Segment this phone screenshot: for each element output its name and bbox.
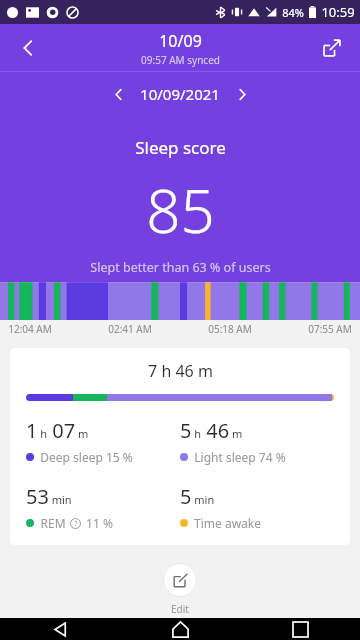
staticText: 5 min	[180, 483, 215, 510]
staticText: 10/09/2021	[140, 84, 220, 104]
button[interactable]: Home	[120, 618, 240, 640]
staticText: 85	[146, 169, 215, 251]
button[interactable]: Edit	[161, 561, 199, 618]
button[interactable]: Recents	[240, 618, 360, 640]
staticText: 12:04 AM	[8, 322, 52, 336]
staticText: 10:59	[321, 3, 355, 21]
button[interactable]: Previous day	[102, 78, 134, 110]
staticText: 07:55 AM	[308, 322, 352, 336]
button[interactable]: Next day	[226, 78, 258, 110]
staticText: Deep sleep 15 %	[40, 449, 133, 465]
staticText: 09:57 AM synced	[141, 53, 220, 67]
staticText: Light sleep 74 %	[194, 449, 286, 465]
staticText: 02:41 AM	[108, 322, 152, 336]
button[interactable]: REM info	[70, 518, 81, 529]
staticText: Edit	[171, 602, 189, 616]
staticText: 11 %	[86, 515, 113, 531]
staticText: 1 h 07 m	[26, 417, 89, 444]
button[interactable]: Back	[0, 618, 120, 640]
button[interactable]: Back	[10, 30, 46, 66]
staticText: Sleep score	[135, 136, 226, 159]
staticText: Time awake	[194, 515, 261, 531]
other: Edit	[163, 563, 197, 597]
button[interactable]: Share	[314, 30, 350, 66]
staticText: 84%	[282, 5, 304, 20]
staticText: REM	[40, 515, 66, 531]
button[interactable]: 7 h 46 m	[10, 348, 350, 545]
staticText: 10/09	[159, 30, 202, 52]
staticText: ?	[74, 519, 78, 529]
staticText: 5 h 46 m	[180, 417, 243, 444]
staticText: 53 min	[26, 483, 72, 510]
staticText: Slept better than 63 % of users	[90, 259, 271, 276]
staticText: 7 h 46 m	[148, 360, 213, 382]
staticText: 05:18 AM	[208, 322, 252, 336]
